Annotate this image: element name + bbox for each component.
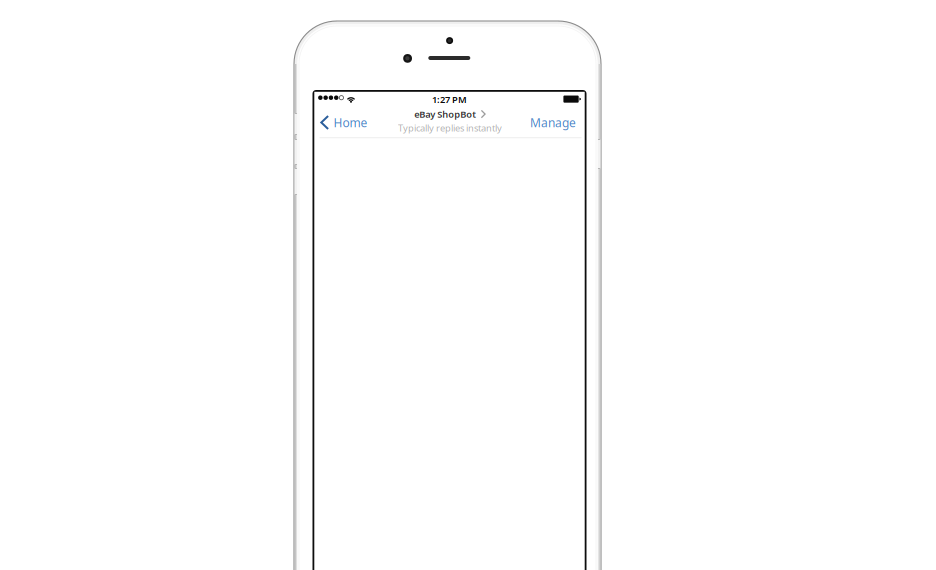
button[interactable]: Home <box>313 107 376 137</box>
staticText: Typically replies instantly <box>398 122 502 134</box>
staticText: eBay ShopBot <box>414 108 476 120</box>
staticText: 1:27 PM <box>432 93 467 105</box>
staticText: Home <box>333 114 367 130</box>
button[interactable]: Manage <box>521 107 586 137</box>
button[interactable]: eBay ShopBot <box>392 105 508 137</box>
staticText: Manage <box>530 114 576 130</box>
